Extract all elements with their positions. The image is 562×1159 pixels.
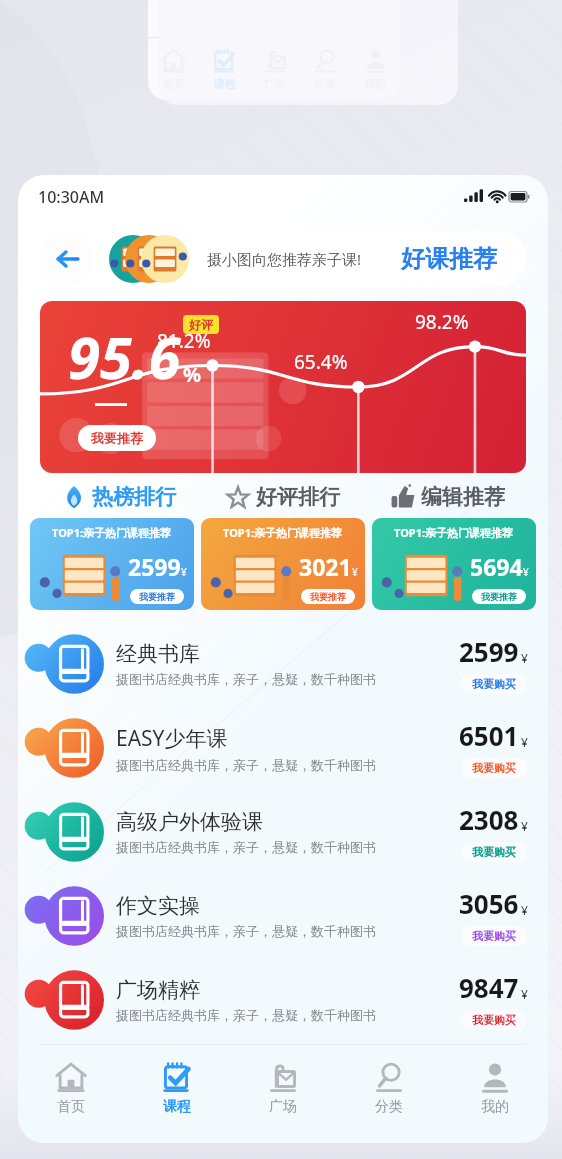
button[interactable]: 分类 — [336, 1045, 442, 1131]
staticText: 课程 — [214, 77, 236, 91]
button[interactable]: 课程 — [199, 38, 250, 100]
staticText: 首页 — [57, 1098, 85, 1116]
staticText: 我的 — [481, 1098, 509, 1116]
staticText: 2308 — [459, 802, 519, 837]
staticText: 95.6 — [68, 317, 181, 396]
staticText: ¥ — [181, 565, 187, 579]
staticText: 我要推荐 — [139, 591, 175, 602]
staticText: ¥ — [521, 818, 528, 834]
button[interactable]: 我要推荐 — [91, 430, 143, 446]
staticText: 我要购买 — [472, 929, 516, 943]
button[interactable]: 我要推荐 — [310, 591, 346, 602]
button[interactable]: 广场 — [230, 1045, 336, 1131]
staticText: 课程 — [163, 1098, 191, 1116]
staticText: ¥ — [521, 902, 528, 918]
staticText: 2599 — [459, 634, 519, 669]
staticText: 好评排行 — [256, 484, 340, 510]
staticText: 广场精粹 — [116, 977, 200, 1003]
button[interactable]: 好课推荐 — [375, 234, 523, 284]
staticText: 摄图书店经典书库，亲子，悬疑，数千种图书 — [116, 757, 376, 773]
staticText: 81.2% — [157, 328, 211, 354]
button[interactable]: 我要购买 — [472, 929, 516, 943]
button[interactable]: 热榜排行 — [36, 484, 200, 510]
staticText: 5694 — [470, 551, 523, 582]
button[interactable]: TOP1:亲子热门课程推荐 — [372, 518, 536, 610]
staticText: TOP1:亲子热门课程推荐 — [223, 525, 343, 540]
staticText: 我要购买 — [472, 761, 516, 775]
staticText: 广场 — [269, 1098, 297, 1116]
staticText: % — [183, 361, 202, 388]
button[interactable]: 我的 — [442, 1045, 548, 1131]
staticText: 高级户外体验课 — [116, 809, 263, 835]
button[interactable]: 首页 — [148, 38, 199, 100]
staticText: 我要推荐 — [481, 591, 517, 602]
staticText: 98.2% — [415, 309, 469, 335]
staticText: TOP1:亲子热门课程推荐 — [394, 525, 514, 540]
staticText: 2599 — [128, 551, 181, 582]
button[interactable]: 摄小图向您推荐亲子课! — [104, 231, 526, 287]
button[interactable]: 经典书库 — [18, 622, 548, 706]
button[interactable]: Back — [40, 232, 94, 286]
staticText: ¥ — [521, 650, 528, 666]
staticText: 经典书库 — [116, 641, 200, 667]
button[interactable]: 我要购买 — [472, 845, 516, 859]
staticText: 摄图书店经典书库，亲子，悬疑，数千种图书 — [116, 1007, 376, 1023]
button[interactable]: TOP1:亲子热门课程推荐 — [30, 518, 194, 610]
staticText: 好评 — [189, 317, 213, 332]
staticText: 10:30AM — [38, 186, 105, 208]
button[interactable]: 我要推荐 — [481, 591, 517, 602]
staticText: 3056 — [459, 886, 519, 921]
staticText: ¥ — [352, 565, 358, 579]
staticText: 我要购买 — [472, 1013, 516, 1027]
staticText: 作文实操 — [116, 893, 200, 919]
staticText: 好课推荐 — [401, 244, 497, 274]
staticText: 6501 — [459, 718, 519, 753]
button[interactable]: 广场精粹 — [18, 958, 548, 1042]
staticText: 9847 — [459, 970, 519, 1005]
staticText: 65.4% — [294, 349, 348, 375]
staticText: 3021 — [299, 551, 352, 582]
staticText: 摄图书店经典书库，亲子，悬疑，数千种图书 — [116, 671, 376, 687]
staticText: 热榜排行 — [92, 484, 176, 510]
button[interactable]: TOP1:亲子热门课程推荐 — [201, 518, 365, 610]
button[interactable]: 我要购买 — [472, 1013, 516, 1027]
button[interactable]: 首页 — [18, 1045, 124, 1131]
button[interactable]: 高级户外体验课 — [18, 790, 548, 874]
staticText: 我要推荐 — [310, 591, 346, 602]
staticText: 我要购买 — [472, 677, 516, 691]
button[interactable]: 我要购买 — [472, 677, 516, 691]
staticText: 我要推荐 — [91, 430, 143, 446]
staticText: 摄图书店经典书库，亲子，悬疑，数千种图书 — [116, 839, 376, 855]
staticText: ¥ — [523, 565, 529, 579]
button[interactable]: 81.2% — [40, 301, 526, 473]
button[interactable]: 课程 — [124, 1045, 230, 1131]
button[interactable]: EASY少年课 — [18, 706, 548, 790]
staticText: 编辑推荐 — [421, 484, 505, 510]
staticText: ¥ — [521, 734, 528, 750]
staticText: 摄图书店经典书库，亲子，悬疑，数千种图书 — [116, 923, 376, 939]
staticText: 摄小图向您推荐亲子课! — [207, 249, 362, 269]
button[interactable]: 好评排行 — [200, 484, 365, 510]
button[interactable]: 作文实操 — [18, 874, 548, 958]
button[interactable]: 我要购买 — [472, 761, 516, 775]
button[interactable]: 编辑推荐 — [365, 484, 530, 510]
staticText: EASY少年课 — [116, 724, 228, 753]
staticText: TOP1:亲子热门课程推荐 — [52, 525, 172, 540]
staticText: 分类 — [375, 1098, 403, 1116]
staticText: ¥ — [521, 986, 528, 1002]
button[interactable]: 我要推荐 — [139, 591, 175, 602]
staticText: 我要购买 — [472, 845, 516, 859]
